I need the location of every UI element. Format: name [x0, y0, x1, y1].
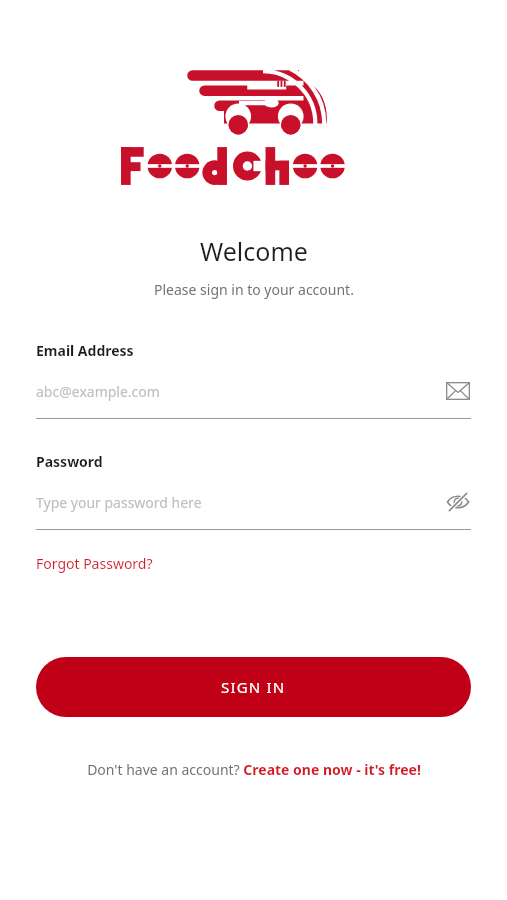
- staticText: Email Address: [36, 341, 134, 360]
- button[interactable]: Show password: [445, 489, 471, 515]
- button[interactable]: Type your password here: [36, 489, 471, 515]
- staticText: Type your password here: [36, 493, 202, 512]
- button[interactable]: Don't have an account? Create one now - …: [87, 760, 421, 779]
- button[interactable]: abc@example.com: [36, 378, 471, 404]
- staticText: Forgot Password?: [36, 554, 153, 573]
- staticText: SIGN IN: [221, 677, 286, 697]
- staticText: abc@example.com: [36, 382, 160, 401]
- button[interactable]: Email: [445, 378, 471, 404]
- staticText: Don't have an account? Create one now - …: [87, 760, 421, 779]
- staticText: Password: [36, 452, 103, 471]
- staticText: Welcome: [200, 234, 308, 268]
- button[interactable]: SIGN IN: [36, 657, 471, 717]
- button[interactable]: Forgot Password?: [36, 550, 153, 577]
- staticText: Please sign in to your account.: [154, 280, 354, 299]
